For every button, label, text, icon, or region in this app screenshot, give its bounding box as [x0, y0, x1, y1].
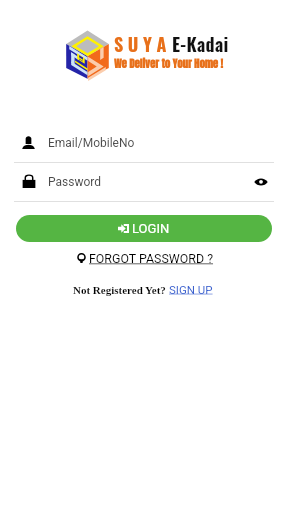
- button[interactable]: FORGOT PASSWORD ?: [76, 251, 214, 266]
- staticText: E-Kadai: [172, 31, 229, 58]
- staticText: FORGOT PASSWORD ?: [89, 251, 214, 266]
- staticText: S U Y A: [114, 31, 167, 58]
- staticText: LOGIN: [132, 221, 170, 236]
- button[interactable]: Email/MobileNo: [14, 130, 274, 163]
- staticText: Not Registered Yet?: [73, 284, 169, 296]
- button[interactable]: SIGN UP: [169, 283, 213, 296]
- button[interactable]: Show password: [252, 173, 270, 191]
- button[interactable]: Password: [14, 169, 274, 202]
- staticText: Email/MobileNo: [48, 136, 135, 150]
- staticText: We Deliver to Your Home !: [114, 55, 224, 71]
- button[interactable]: LOGIN: [16, 215, 272, 242]
- staticText: Password: [48, 175, 102, 189]
- staticText: SIGN UP: [169, 283, 213, 296]
